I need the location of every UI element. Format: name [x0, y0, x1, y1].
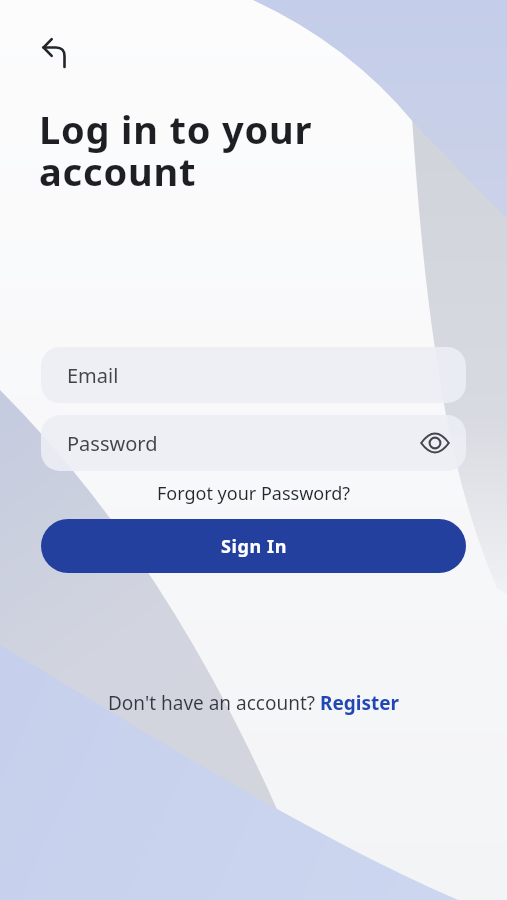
button[interactable]: Email: [41, 347, 466, 403]
button[interactable]: Password: [41, 415, 466, 471]
button[interactable]: Register: [320, 690, 400, 716]
staticText: Email: [67, 362, 119, 389]
staticText: Sign In: [221, 534, 287, 559]
button[interactable]: Sign In: [41, 519, 466, 573]
button[interactable]: [34, 30, 78, 74]
staticText: Don't have an account?: [108, 690, 320, 716]
button[interactable]: Forgot your Password?: [157, 481, 351, 506]
staticText: Register: [320, 690, 400, 716]
staticText: Log in to your account: [39, 103, 313, 197]
staticText: Password: [67, 430, 158, 457]
staticText: Forgot your Password?: [157, 481, 351, 506]
